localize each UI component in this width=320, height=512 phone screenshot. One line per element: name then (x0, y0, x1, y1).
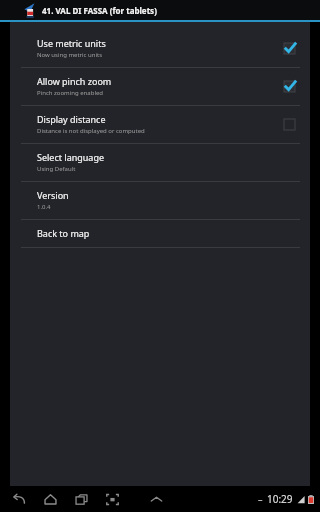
staticText: 10:29 (267, 492, 293, 506)
staticText: Select language (37, 151, 105, 163)
button[interactable]: Back to map (10, 220, 310, 247)
button[interactable]: Screenshot (101, 486, 123, 512)
staticText: Display distance (37, 113, 106, 125)
staticText: Version (37, 189, 69, 201)
button[interactable]: Select language (10, 144, 310, 181)
staticText: Use metric units (37, 37, 106, 49)
staticText: Using Default (37, 165, 76, 173)
button[interactable]: Expand (145, 486, 167, 512)
button[interactable]: Home (39, 486, 61, 512)
staticText: Pinch zooming enabled (37, 89, 104, 97)
staticText: Allow pinch zoom (37, 75, 112, 87)
staticText: Now using metric units (37, 51, 103, 59)
staticText: 41. VAL DI FASSA (for tablets) (42, 5, 157, 16)
button[interactable]: Recent apps (70, 486, 92, 512)
button[interactable]: Unchecked (280, 115, 298, 133)
button[interactable]: Checked (280, 39, 298, 57)
button[interactable]: Version (10, 182, 310, 219)
button[interactable]: Allow pinch zoom (10, 68, 310, 105)
staticText: 1.0.4 (37, 203, 51, 211)
button[interactable]: Display distance (10, 106, 310, 143)
button[interactable]: Checked (280, 77, 298, 95)
staticText: – (258, 493, 263, 505)
button[interactable]: Back (8, 486, 30, 512)
staticText: Distance is not displayed or computed (37, 127, 145, 135)
button[interactable]: Use metric units (10, 30, 310, 67)
staticText: Back to map (37, 227, 90, 239)
